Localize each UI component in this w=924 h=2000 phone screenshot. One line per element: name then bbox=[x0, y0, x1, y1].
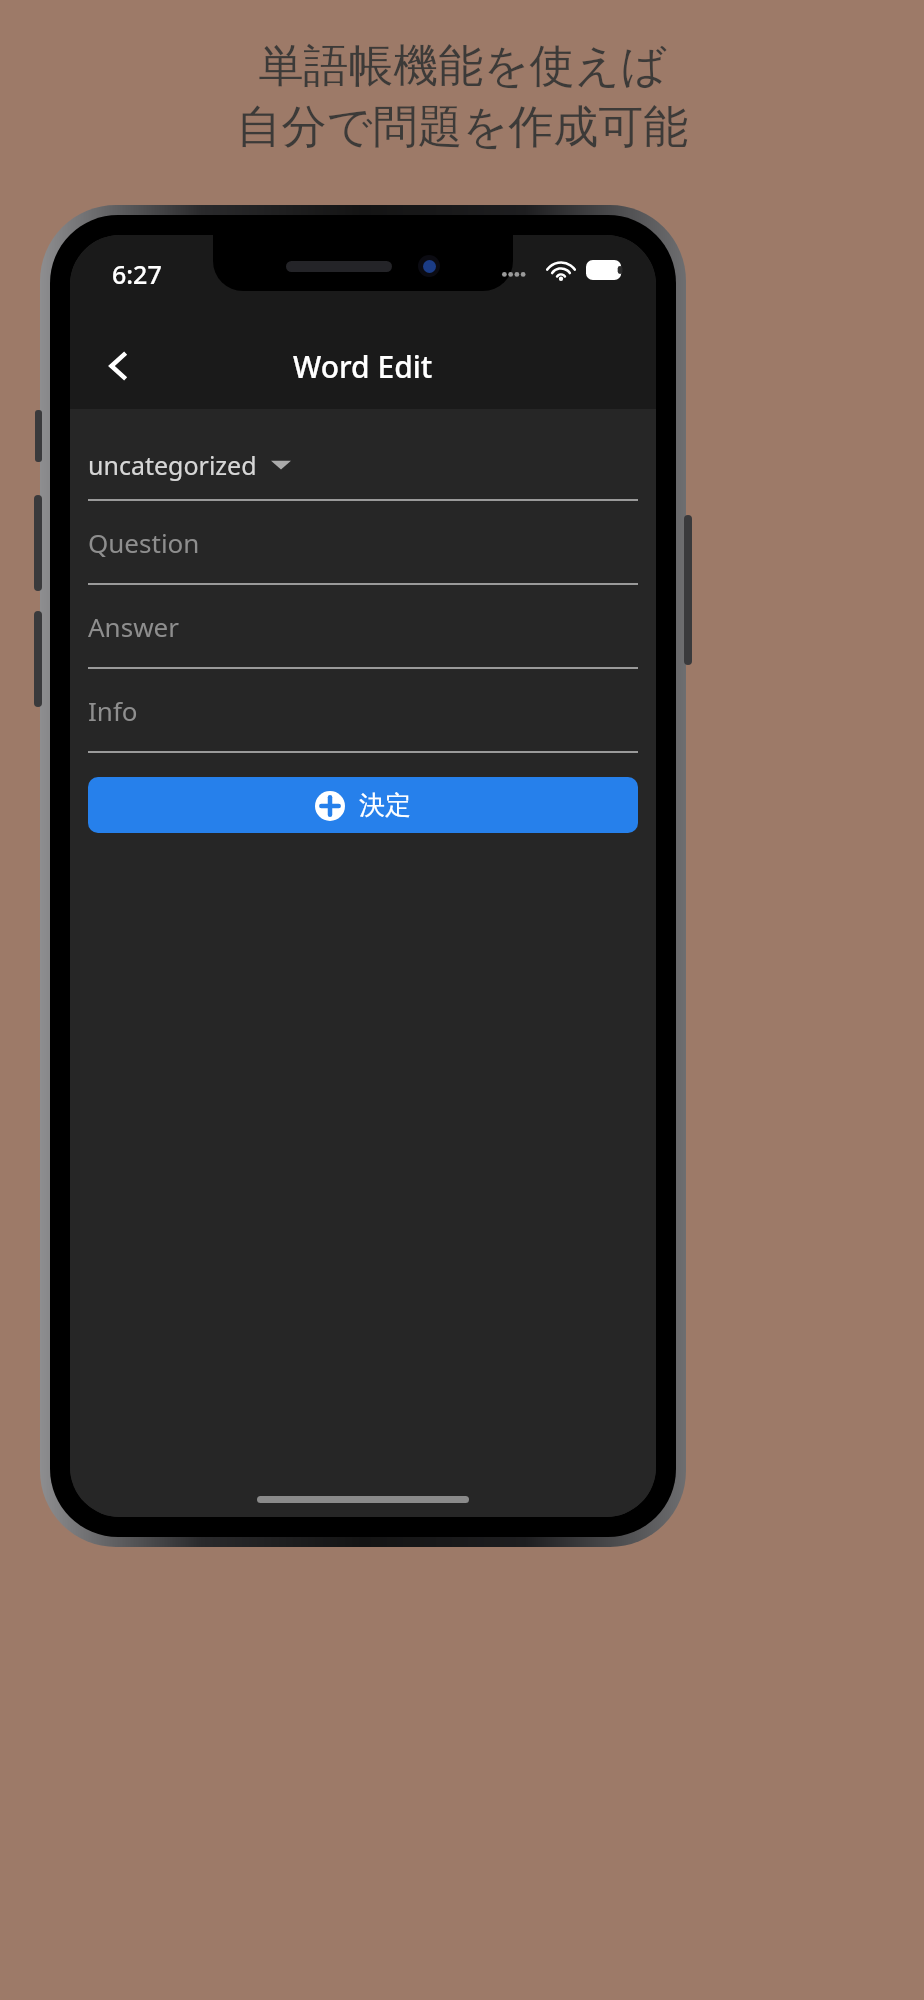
staticText: 自分で問題を作成可能 bbox=[236, 99, 689, 156]
staticText: Answer bbox=[88, 609, 179, 644]
staticText: Word Edit bbox=[293, 346, 433, 387]
button[interactable]: uncategorized bbox=[88, 445, 638, 485]
button[interactable]: Info bbox=[88, 669, 638, 753]
button[interactable]: Question bbox=[88, 501, 638, 585]
staticText: 決定 bbox=[359, 789, 411, 822]
button[interactable]: 決定 bbox=[88, 777, 638, 833]
staticText: Question bbox=[88, 525, 200, 560]
button[interactable]: Answer bbox=[88, 585, 638, 669]
staticText: 6:27 bbox=[112, 257, 162, 291]
staticText: uncategorized bbox=[88, 448, 257, 482]
button[interactable]: Back bbox=[88, 336, 148, 396]
staticText: Info bbox=[88, 693, 138, 728]
staticText: 単語帳機能を使えば bbox=[258, 38, 667, 95]
